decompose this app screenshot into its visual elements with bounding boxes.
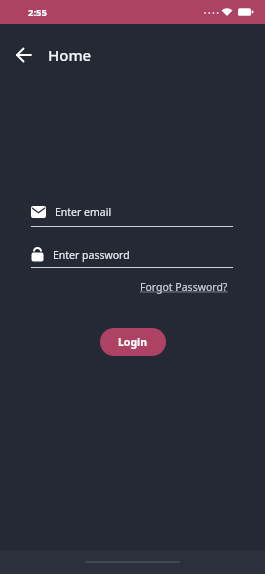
staticText: 2:55 [28, 6, 47, 19]
button[interactable]: Enter password [31, 247, 233, 268]
staticText: Enter email [55, 205, 112, 219]
button[interactable]: Login [100, 328, 166, 356]
button[interactable]: Enter email [31, 205, 233, 227]
staticText: Enter password [53, 248, 130, 262]
staticText: Home [48, 45, 92, 65]
button[interactable] [0, 31, 48, 79]
staticText: Forgot Password? [140, 280, 228, 294]
staticText: Login [118, 335, 148, 349]
button[interactable]: Forgot Password? [140, 280, 233, 294]
